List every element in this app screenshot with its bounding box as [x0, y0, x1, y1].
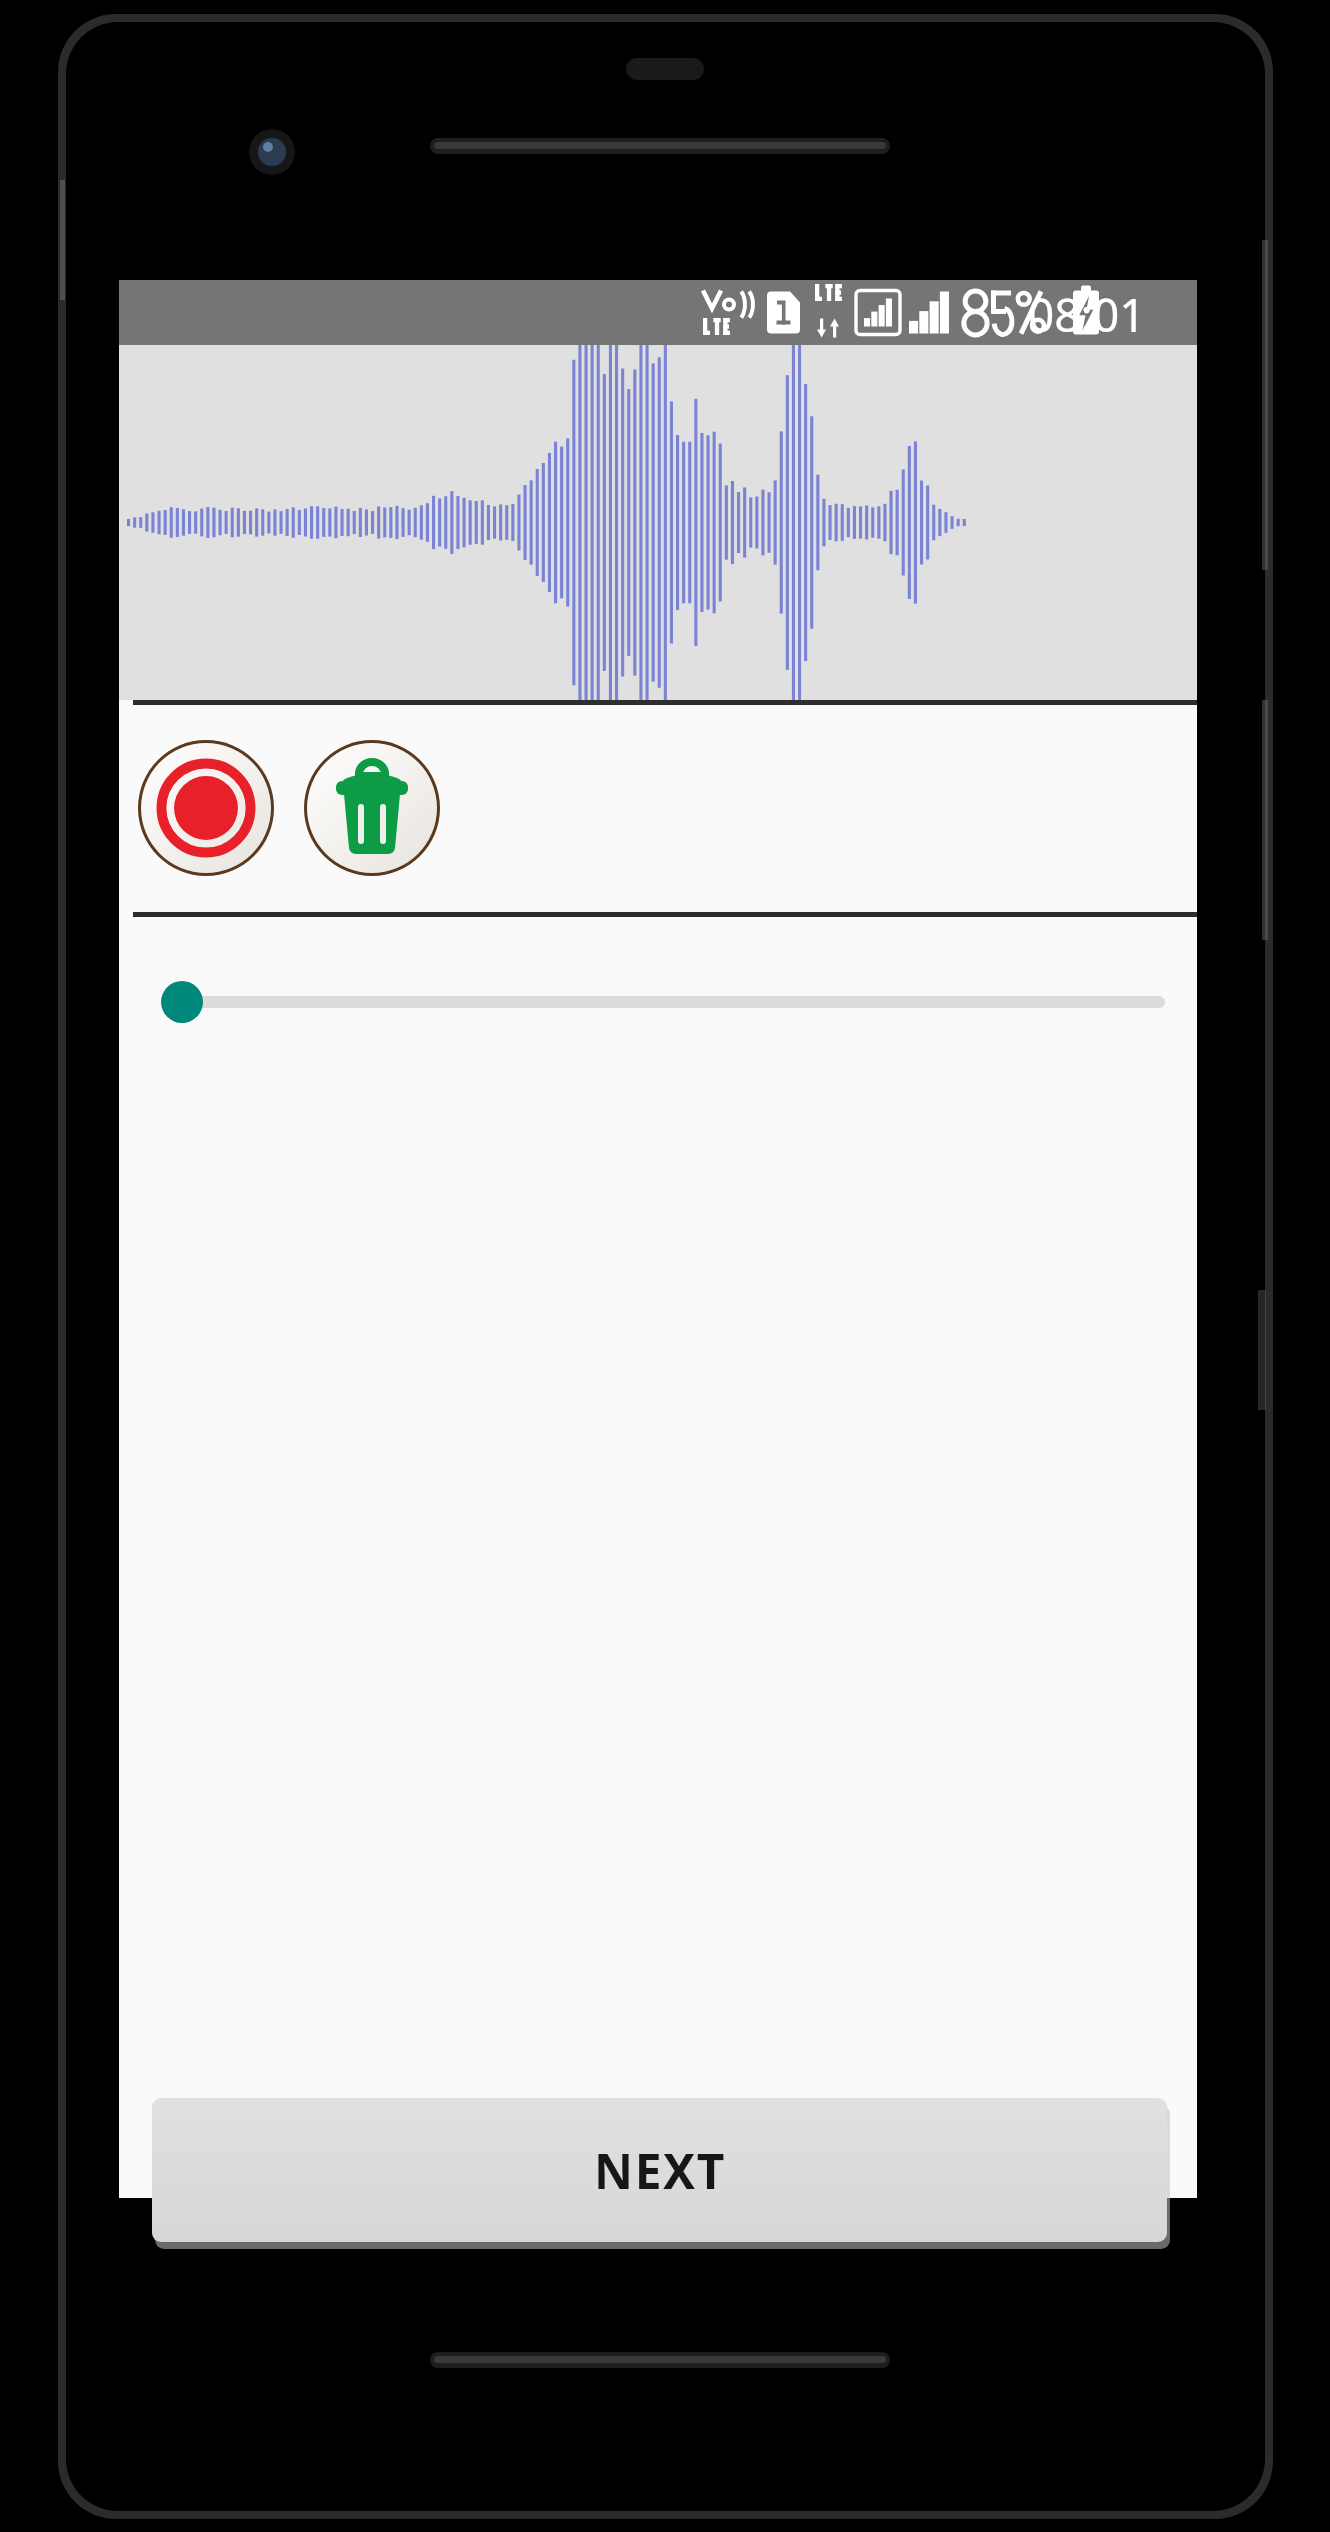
staticText: NEXT [594, 2138, 726, 2203]
button[interactable]: Playback position [152, 952, 1182, 1052]
button[interactable]: Delete recording [304, 740, 440, 876]
button[interactable]: Record [138, 740, 274, 876]
staticText: 08:01 [1028, 283, 1146, 343]
button[interactable]: NEXT [152, 2098, 1167, 2242]
